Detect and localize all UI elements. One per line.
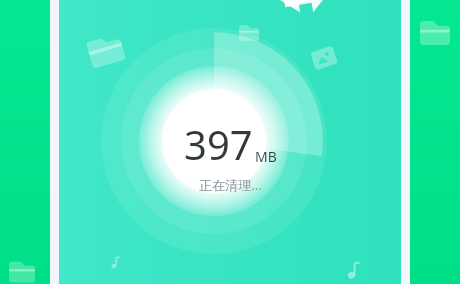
button[interactable]: Next page [410, 0, 460, 284]
staticText: 397 [184, 117, 253, 171]
button[interactable]: Previous page [0, 0, 50, 284]
staticText: 正在清理... [199, 176, 262, 194]
staticText: MB [255, 147, 277, 166]
